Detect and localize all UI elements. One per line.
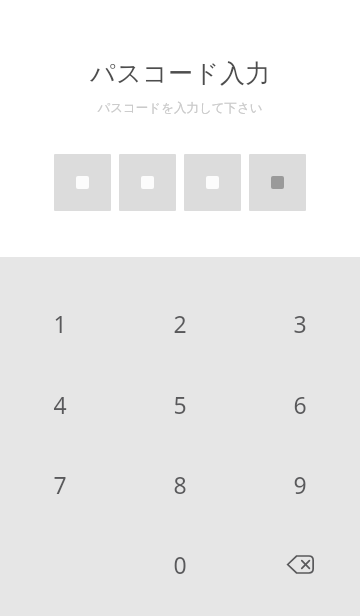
button[interactable]: 9 [240,444,360,524]
button[interactable] [54,154,111,211]
button[interactable]: 7 [0,444,120,524]
staticText: 2 [173,308,187,339]
staticText: 7 [53,469,67,500]
button[interactable] [119,154,176,211]
button[interactable]: 1 [0,257,120,364]
button[interactable] [249,154,306,211]
staticText: 0 [173,549,187,580]
button[interactable] [184,154,241,211]
staticText: パスコード入力 [90,58,271,89]
button[interactable]: 8 [120,444,240,524]
staticText: パスコードを入力して下さい [97,100,263,116]
button[interactable]: 0 [120,524,240,604]
button[interactable]: 2 [120,257,240,364]
staticText: 4 [53,389,67,420]
button[interactable]: 3 [240,257,360,364]
button[interactable]: 6 [240,364,360,444]
staticText: 6 [293,389,307,420]
staticText: 3 [293,308,307,339]
button[interactable]: Backspace [240,524,360,604]
staticText: 9 [293,469,307,500]
button[interactable]: 5 [120,364,240,444]
staticText: 5 [173,389,187,420]
staticText: 8 [173,469,187,500]
staticText: 1 [53,308,67,339]
button[interactable]: 4 [0,364,120,444]
